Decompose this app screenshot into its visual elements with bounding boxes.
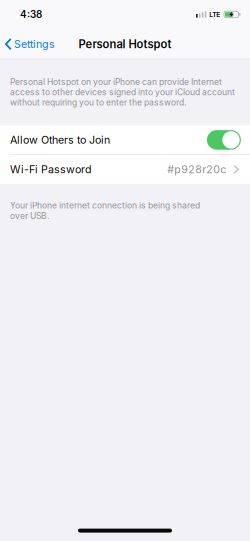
staticText: Wi-Fi Password [10,163,92,176]
button[interactable]: Allow Others to Join [0,125,250,154]
staticText: Personal Hotspot [78,37,171,51]
staticText: #p928r20c [167,163,226,176]
staticText: Allow Others to Join [10,133,110,146]
button[interactable]: Wi-Fi Password [0,155,250,184]
staticText: without requiring you to enter the passw… [10,97,186,108]
staticText: Your iPhone internet connection is being… [10,200,200,211]
staticText: Settings [14,38,55,50]
staticText: over USB. [10,211,49,221]
staticText: LTE [209,10,220,18]
staticText: access to other devices signed into your… [10,87,235,97]
staticText: Personal Hotspot on your iPhone can prov… [10,77,222,87]
button[interactable]: Settings [0,32,61,56]
staticText: 4:38 [20,8,42,20]
